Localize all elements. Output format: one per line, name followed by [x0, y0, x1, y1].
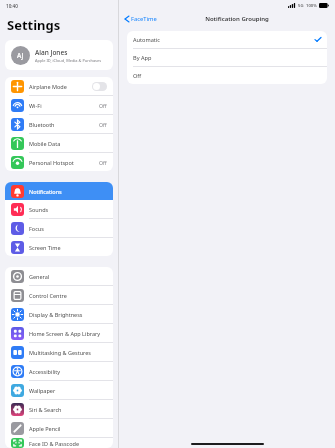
button[interactable]: Focus [5, 219, 113, 237]
staticText: Apple Pencil [29, 425, 107, 432]
staticText: Display & Brightness [29, 311, 107, 318]
staticText: Face ID & Passcode [29, 440, 107, 447]
staticText: Wallpaper [29, 387, 107, 394]
button[interactable]: Airplane Mode toggle [92, 82, 107, 91]
button[interactable]: Mobile Data [5, 134, 113, 152]
staticText: Settings [7, 16, 61, 34]
button[interactable]: Airplane Mode [5, 77, 113, 95]
staticText: Notification Grouping [205, 15, 269, 23]
button[interactable]: Personal Hotspot [5, 153, 113, 171]
button[interactable]: Notifications [5, 182, 113, 200]
button[interactable]: Wi-Fi [5, 96, 113, 114]
button[interactable]: Display & Brightness [5, 305, 113, 323]
staticText: Alan Jones [35, 48, 68, 57]
staticText: Sounds [29, 206, 107, 213]
staticText: Screen Time [29, 244, 107, 251]
staticText: Off [99, 159, 107, 166]
staticText: Notifications [29, 188, 107, 195]
staticText: Personal Hotspot [29, 159, 99, 166]
button[interactable]: Wallpaper [5, 381, 113, 399]
staticText: AJ [17, 51, 24, 60]
button[interactable]: AJ [5, 40, 113, 70]
button[interactable]: Siri & Search [5, 400, 113, 418]
staticText: 5G [298, 3, 304, 9]
button[interactable]: Apple Pencil [5, 419, 113, 437]
staticText: 10:40 [6, 3, 18, 9]
button[interactable]: Control Centre [5, 286, 113, 304]
staticText: By App [133, 54, 321, 62]
button[interactable]: Multitasking & Gestures [5, 343, 113, 361]
staticText: Off [99, 121, 107, 128]
button[interactable]: Sounds [5, 200, 113, 218]
button[interactable]: General [5, 267, 113, 285]
staticText: Mobile Data [29, 140, 107, 147]
button[interactable]: FaceTime [123, 13, 159, 25]
staticText: Accessibility [29, 368, 107, 375]
staticText: Off [99, 102, 107, 109]
button[interactable]: Screen Time [5, 238, 113, 256]
staticText: Siri & Search [29, 406, 107, 413]
button[interactable]: Automatic [127, 31, 327, 48]
button[interactable]: By App [127, 49, 327, 66]
staticText: Off [133, 72, 321, 80]
staticText: Multitasking & Gestures [29, 349, 107, 356]
staticText: Bluetooth [29, 121, 99, 128]
staticText: 100% [306, 3, 317, 9]
staticText: Home Screen & App Library [29, 330, 107, 337]
staticText: General [29, 273, 107, 280]
staticText: Airplane Mode [29, 83, 92, 90]
button[interactable]: Face ID & Passcode [5, 438, 113, 448]
staticText: Wi-Fi [29, 102, 99, 109]
staticText: FaceTime [131, 15, 157, 23]
staticText: Focus [29, 225, 107, 232]
button[interactable]: Accessibility [5, 362, 113, 380]
button[interactable]: Home Screen & App Library [5, 324, 113, 342]
button[interactable]: Off [127, 67, 327, 84]
staticText: Apple ID, iCloud, Media & Purchases [35, 58, 102, 63]
staticText: Automatic [133, 36, 315, 44]
button[interactable]: Bluetooth [5, 115, 113, 133]
staticText: Control Centre [29, 292, 107, 299]
